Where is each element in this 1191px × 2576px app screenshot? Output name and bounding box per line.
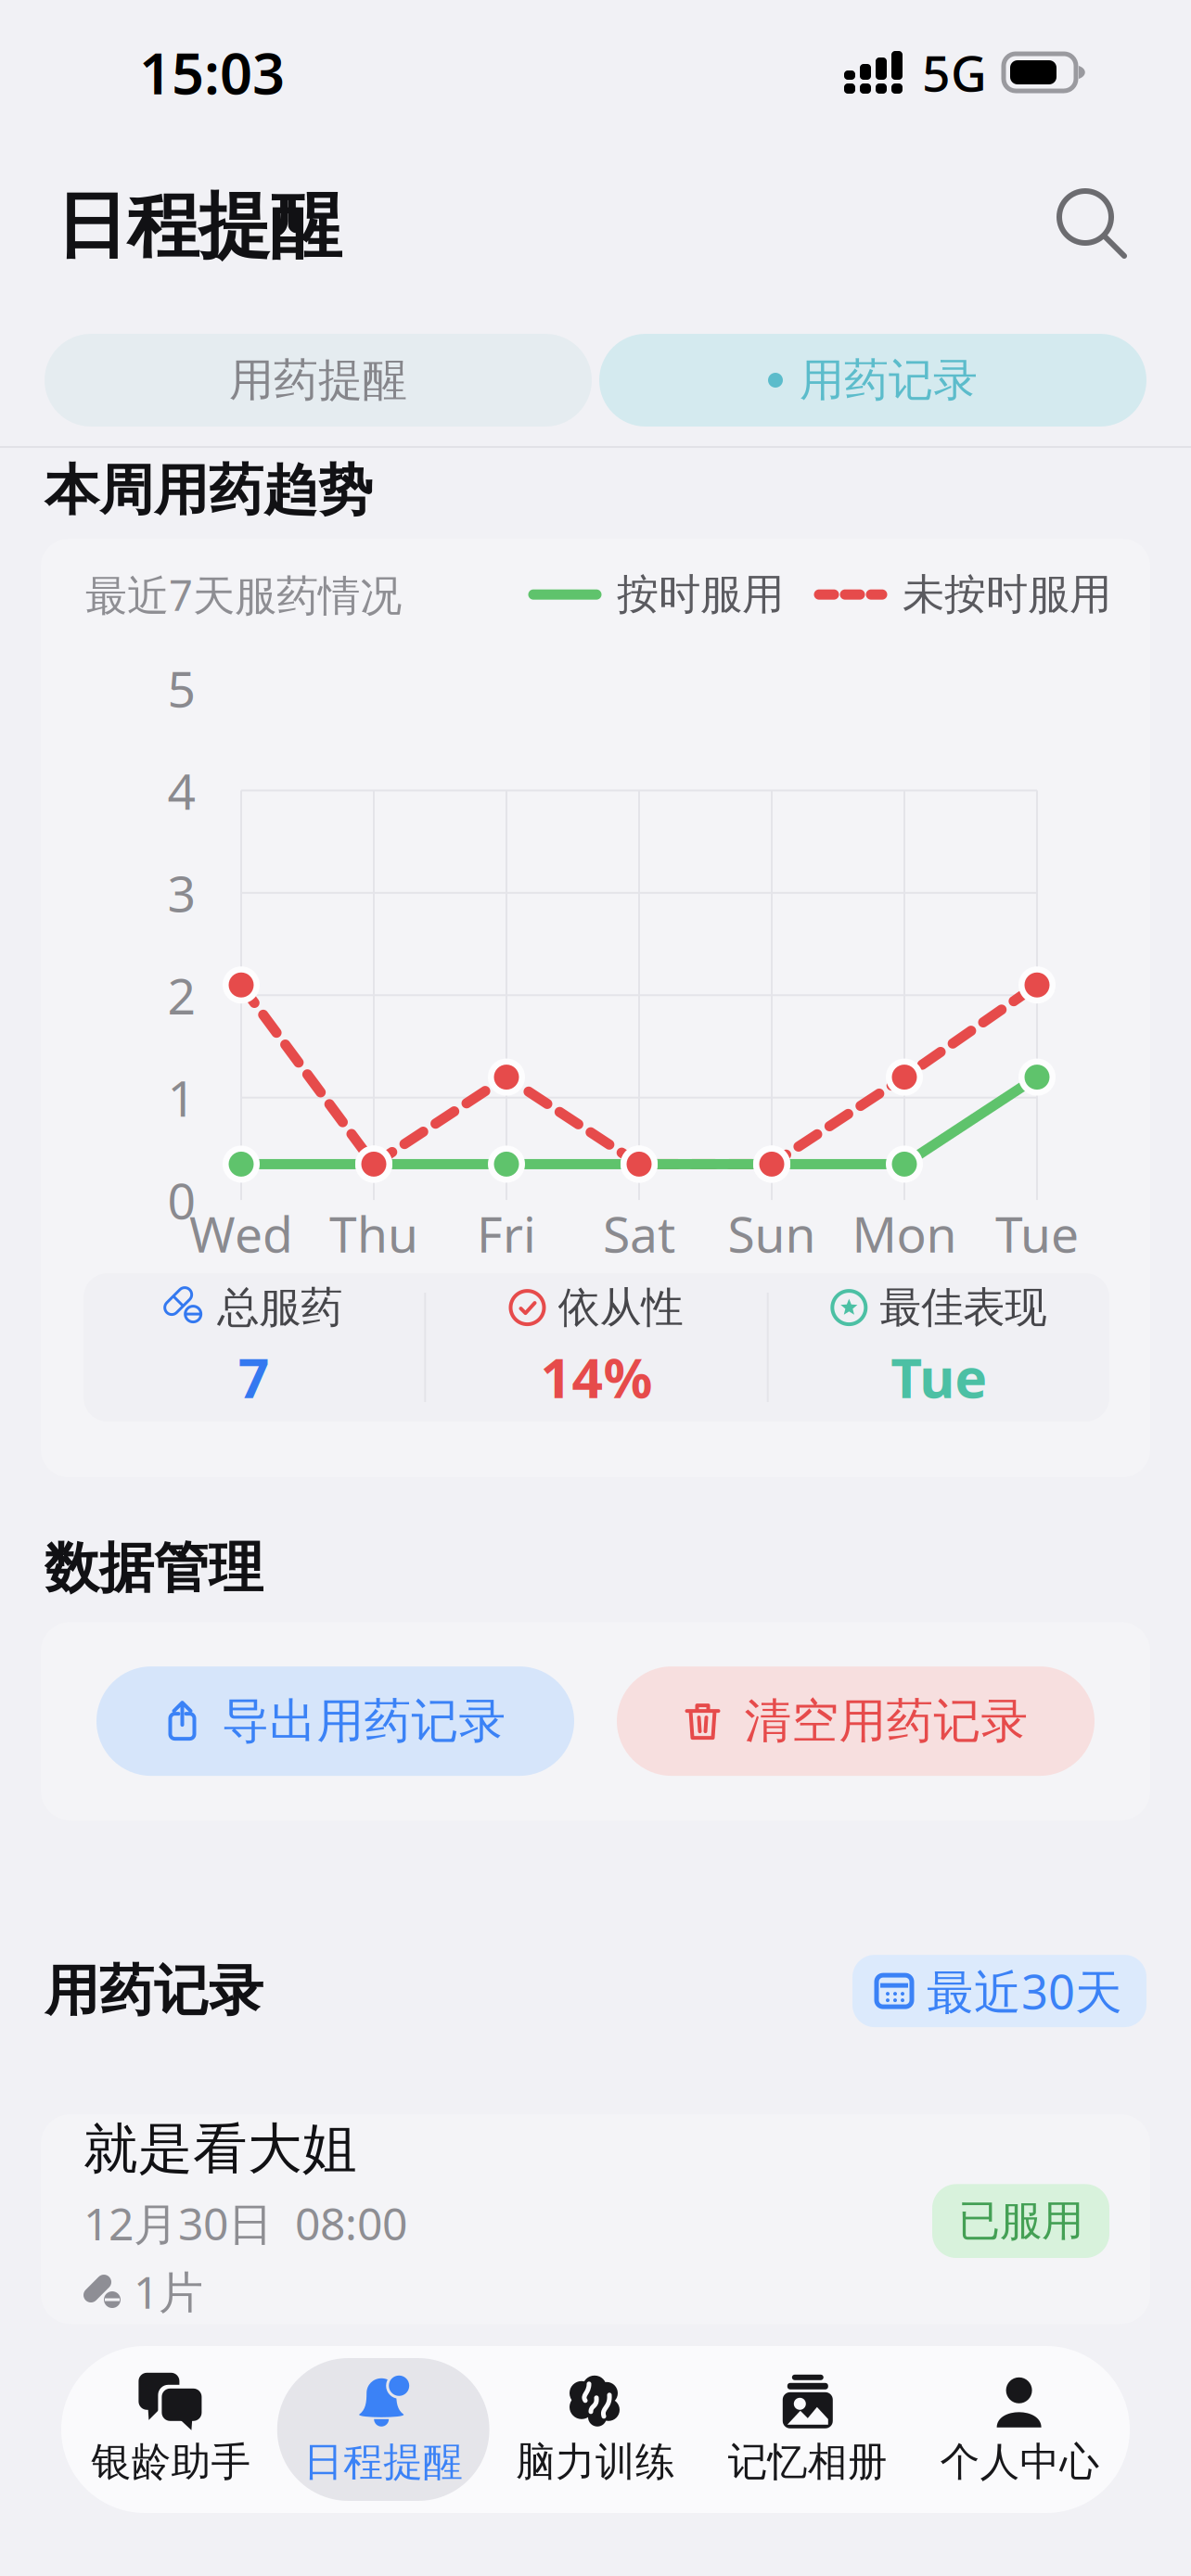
staticText: 1 xyxy=(167,1065,196,1130)
staticText: 日程提醒 xyxy=(304,2438,463,2486)
staticText: 未按时服用 xyxy=(903,569,1111,620)
staticText: Mon xyxy=(852,1200,957,1266)
button[interactable]: 最近30天 xyxy=(852,1955,1146,2027)
staticText: 最近30天 xyxy=(927,1960,1122,2022)
staticText: 5G xyxy=(922,40,987,105)
staticText: 7 xyxy=(238,1341,270,1413)
staticText: 0 xyxy=(167,1167,196,1233)
button[interactable]: 个人中心 xyxy=(914,2358,1126,2501)
staticText: 5 xyxy=(167,655,196,721)
staticText: 数据管理 xyxy=(45,1535,263,1602)
button[interactable]: 搜索 xyxy=(1050,182,1139,271)
staticText: 用药记录 xyxy=(800,353,978,408)
staticText: 最佳表现 xyxy=(880,1282,1047,1333)
staticText: 14% xyxy=(540,1341,653,1413)
staticText: 导出用药记录 xyxy=(222,1692,506,1750)
staticText: 按时服用 xyxy=(617,569,784,620)
staticText: Sun xyxy=(728,1200,816,1266)
button[interactable]: 银龄助手 xyxy=(65,2358,277,2501)
button[interactable]: 日程提醒 xyxy=(277,2358,489,2501)
staticText: Fri xyxy=(477,1200,536,1266)
staticText: Sat xyxy=(603,1200,675,1266)
staticText: 个人中心 xyxy=(940,2438,1100,2486)
button[interactable]: 用药记录 xyxy=(599,334,1146,427)
staticText: 3 xyxy=(167,860,196,926)
staticText: Wed xyxy=(189,1200,293,1266)
staticText: 15:03 xyxy=(139,35,285,110)
staticText: 总服药 xyxy=(217,1282,342,1333)
staticText: 依从性 xyxy=(558,1282,683,1333)
staticText: 已服用 xyxy=(958,2195,1083,2247)
button[interactable]: 用药提醒 xyxy=(45,334,592,427)
staticText: 1片 xyxy=(134,2262,203,2321)
staticText: 银龄助手 xyxy=(91,2438,251,2486)
staticText: 12月30日 08:00 xyxy=(83,2193,407,2252)
staticText: Tue xyxy=(995,1200,1079,1266)
button[interactable]: 清空用药记录 xyxy=(617,1666,1095,1776)
staticText: 2 xyxy=(167,962,196,1028)
staticText: 本周用药趋势 xyxy=(45,457,373,524)
staticText: 最近7天服药情况 xyxy=(85,567,402,622)
staticText: 日程提醒 xyxy=(56,182,341,270)
staticText: 用药提醒 xyxy=(229,353,407,408)
staticText: 记忆相册 xyxy=(728,2438,887,2486)
staticText: 脑力训练 xyxy=(516,2438,675,2486)
staticText: Tue xyxy=(891,1341,987,1413)
button[interactable]: 记忆相册 xyxy=(702,2358,914,2501)
button[interactable]: 脑力训练 xyxy=(489,2358,702,2501)
staticText: 清空用药记录 xyxy=(744,1692,1028,1750)
staticText: Thu xyxy=(329,1200,418,1266)
button[interactable]: 导出用药记录 xyxy=(96,1666,574,1776)
staticText: 4 xyxy=(167,758,196,823)
staticText: 用药记录 xyxy=(45,1958,263,2024)
button[interactable]: 就是看大姐 xyxy=(41,2114,1150,2324)
staticText: 就是看大姐 xyxy=(83,2115,357,2182)
